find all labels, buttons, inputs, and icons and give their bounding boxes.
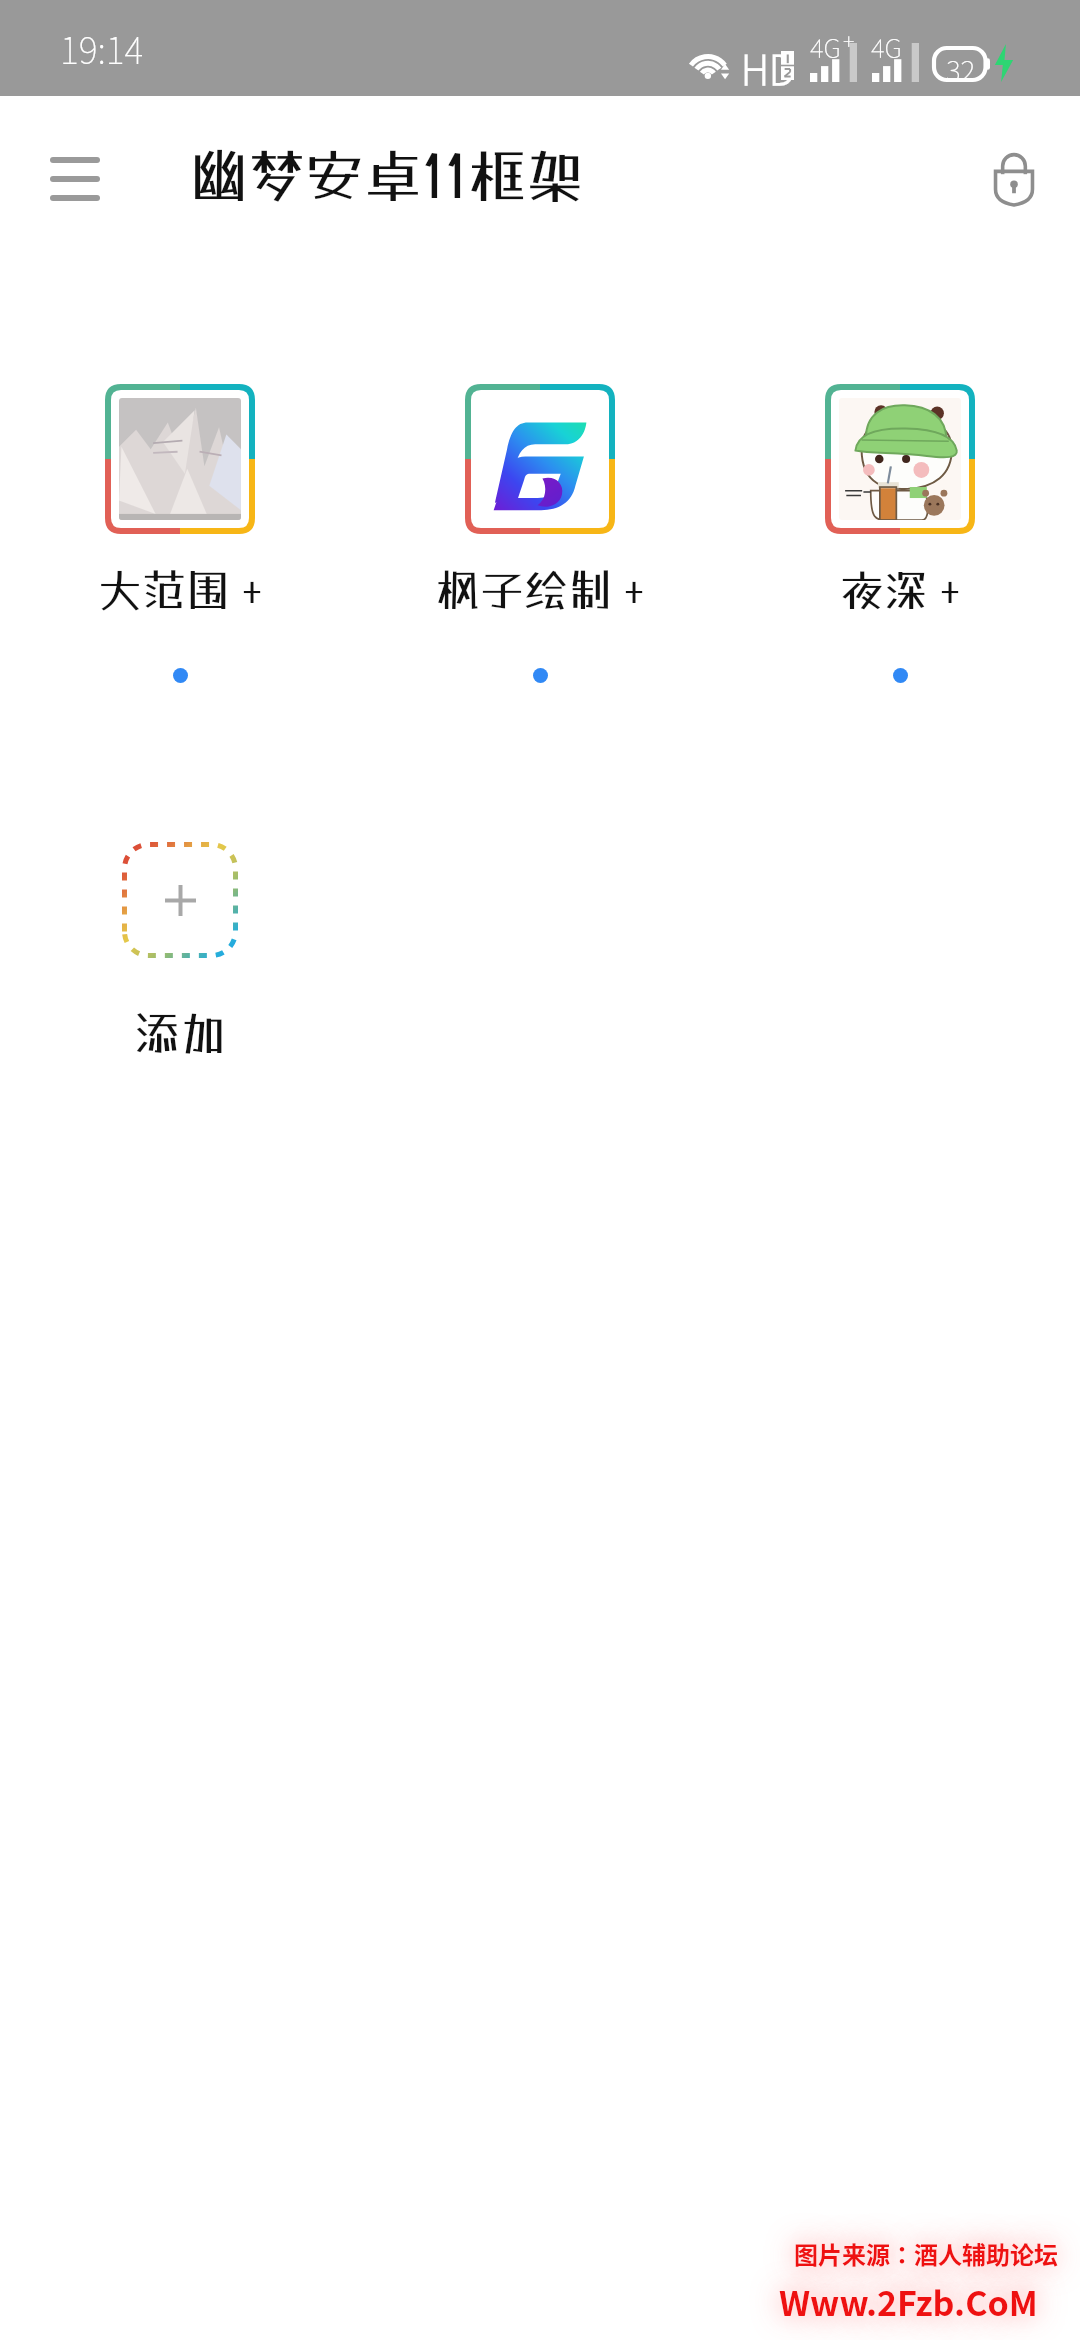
button[interactable]: 大范围 +: [0, 384, 360, 683]
button[interactable]: Lock: [974, 135, 1054, 219]
staticText: 夜深 +: [840, 564, 961, 616]
staticText: 枫子绘制 +: [436, 564, 645, 616]
button[interactable]: 枫子绘制 +: [360, 384, 720, 683]
staticText: 大范围 +: [98, 564, 263, 616]
staticText: 添加: [134, 1006, 226, 1060]
staticText: 19:14: [60, 22, 144, 74]
staticText: 图片来源：酒人辅助论坛: [794, 2236, 1058, 2271]
staticText: 4G: [871, 28, 902, 66]
button[interactable]: 夜深 +: [720, 384, 1080, 683]
staticText: 幽梦安卓11框架: [190, 141, 585, 209]
staticText: 32: [946, 49, 976, 90]
staticText: 4G: [810, 28, 841, 66]
button[interactable]: Menu: [44, 131, 106, 227]
staticText: HD: [741, 39, 796, 97]
staticText: Www.2Fzb.CoM: [779, 2277, 1038, 2326]
staticText: +: [843, 24, 855, 56]
button[interactable]: 添加: [122, 842, 238, 1060]
